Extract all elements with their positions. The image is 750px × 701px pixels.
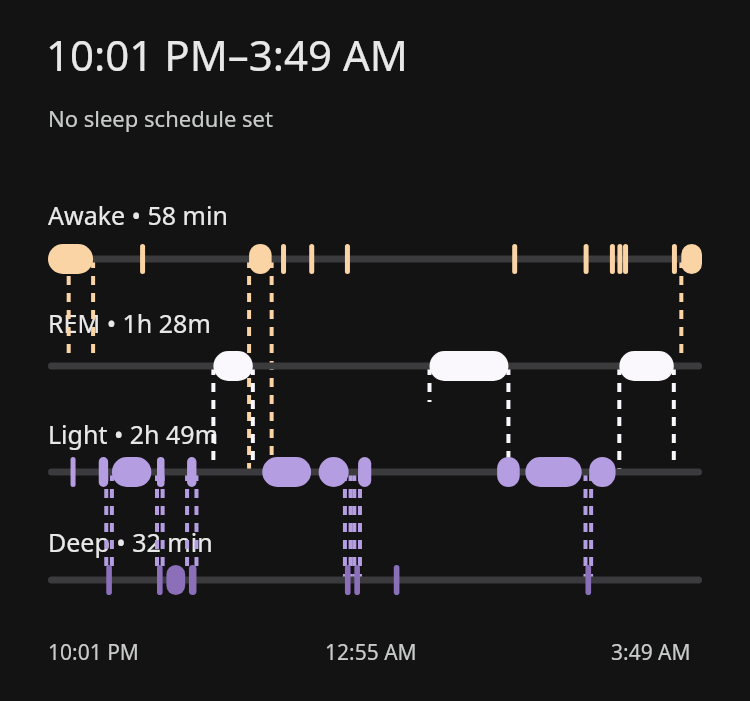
button[interactable]: Sleep stages hypnogram: [0, 0, 750, 701]
staticText: Light • 2h 49m: [48, 417, 219, 451]
staticText: Deep • 32 min: [48, 525, 213, 559]
staticText: 12:55 AM: [325, 638, 417, 667]
staticText: Awake • 58 min: [48, 198, 228, 232]
staticText: 10:01 PM: [48, 638, 139, 667]
staticText: 10:01 PM–3:49 AM: [46, 26, 408, 83]
staticText: REM • 1h 28m: [48, 306, 211, 340]
staticText: No sleep schedule set: [48, 103, 273, 133]
staticText: 3:49 AM: [611, 638, 691, 667]
